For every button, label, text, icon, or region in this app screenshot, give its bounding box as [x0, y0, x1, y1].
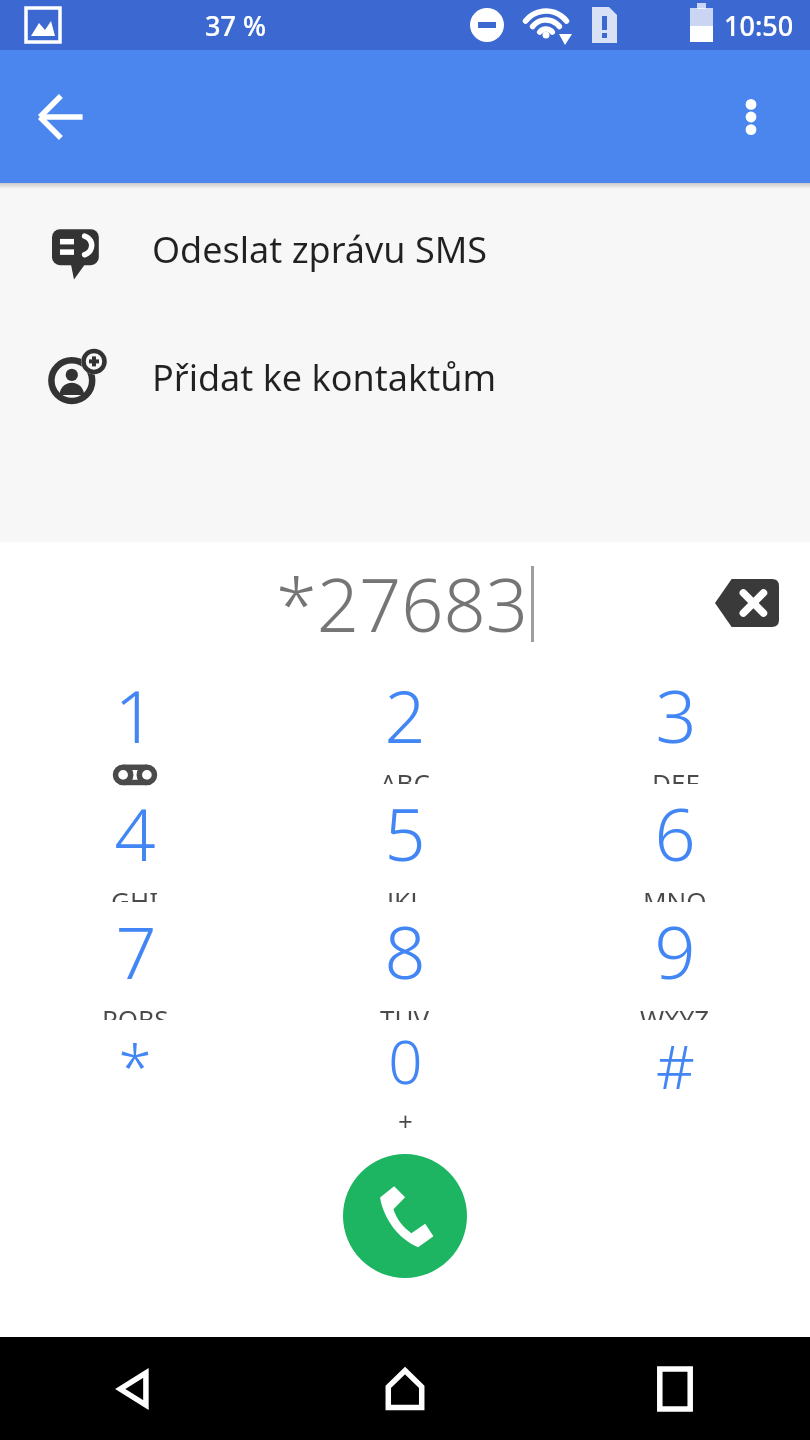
button[interactable]: 6	[540, 784, 810, 902]
button[interactable]: Back	[0, 1337, 270, 1440]
button[interactable]: Odeslat zprávu SMS	[0, 203, 810, 295]
staticText: JKL	[387, 883, 424, 902]
staticText: 8	[384, 902, 426, 1000]
staticText: TUV	[380, 1001, 430, 1020]
button[interactable]: 8	[270, 902, 540, 1020]
staticText: WXYZ	[640, 1001, 710, 1020]
staticText: *	[118, 1025, 152, 1107]
staticText: 10:50	[724, 7, 794, 44]
staticText: 4	[114, 784, 156, 882]
staticText: *27683	[276, 553, 529, 654]
button[interactable]: 0	[270, 1020, 540, 1138]
staticText: GHI	[111, 883, 159, 902]
button[interactable]: Back	[22, 78, 100, 156]
button[interactable]: 9	[540, 902, 810, 1020]
button[interactable]: Přidat ke kontaktům	[0, 331, 810, 423]
button[interactable]: Recent apps	[540, 1337, 810, 1440]
button[interactable]: More options	[712, 78, 790, 156]
button[interactable]: *	[0, 1020, 270, 1138]
button[interactable]: Backspace	[704, 560, 790, 646]
staticText: 6	[654, 784, 696, 882]
button[interactable]: 2	[270, 666, 540, 784]
staticText: 7	[115, 902, 157, 1000]
staticText: 5	[384, 784, 426, 882]
staticText: Odeslat zprávu SMS	[152, 225, 488, 274]
staticText: Přidat ke kontaktům	[152, 353, 497, 402]
button[interactable]: 4	[0, 784, 270, 902]
button[interactable]: Home	[270, 1337, 540, 1440]
staticText: 2	[384, 666, 426, 764]
button[interactable]: 7	[0, 902, 270, 1020]
staticText: DEF	[652, 765, 699, 784]
button[interactable]: 5	[270, 784, 540, 902]
staticText: 0	[388, 1020, 423, 1102]
button[interactable]: 3	[540, 666, 810, 784]
staticText: #	[656, 1025, 695, 1107]
button[interactable]: #	[540, 1020, 810, 1138]
staticText: MNO	[643, 883, 707, 902]
staticText: 1	[114, 666, 156, 764]
staticText: PQRS	[102, 1001, 169, 1020]
staticText: ABC	[380, 765, 430, 784]
staticText: 37 %	[205, 7, 266, 44]
staticText: +	[398, 1103, 413, 1138]
staticText: 9	[654, 902, 696, 1000]
button[interactable]: Call	[343, 1154, 467, 1278]
staticText: 3	[655, 666, 697, 764]
button[interactable]: 1	[0, 666, 270, 784]
